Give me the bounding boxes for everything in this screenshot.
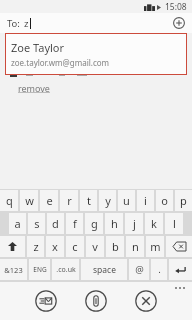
staticText: space	[93, 264, 116, 276]
button[interactable]: To:	[0, 13, 192, 33]
staticText: ENG	[33, 265, 47, 274]
button[interactable]: t	[80, 190, 97, 211]
button[interactable]: b	[106, 236, 124, 257]
staticText: a	[14, 216, 21, 231]
button[interactable]: e	[40, 190, 58, 211]
button[interactable]: k	[145, 213, 163, 234]
staticText: k	[151, 216, 157, 231]
button[interactable]: Attach	[84, 289, 108, 313]
staticText: d	[52, 216, 59, 231]
button[interactable]: Send	[34, 289, 58, 313]
button[interactable]: remove	[18, 82, 50, 94]
staticText: o	[161, 193, 168, 208]
staticText: .	[158, 263, 161, 276]
staticText: 15:08	[165, 1, 187, 13]
staticText: b	[112, 239, 119, 254]
button[interactable]: z	[27, 236, 44, 257]
button[interactable]: y	[99, 190, 116, 211]
staticText: To:	[7, 17, 20, 30]
staticText: n	[132, 239, 139, 254]
button[interactable]: v	[86, 236, 104, 257]
button[interactable]: i	[137, 190, 154, 211]
button[interactable]: q	[0, 190, 18, 211]
button[interactable]: More options	[175, 287, 185, 289]
staticText: l	[173, 216, 176, 231]
staticText: remove	[18, 82, 50, 94]
staticText: z	[33, 239, 39, 254]
button[interactable]: c	[66, 236, 84, 257]
staticText: t	[87, 193, 91, 208]
staticText: v	[92, 239, 98, 254]
staticText: x	[52, 239, 58, 254]
button[interactable]: h	[105, 213, 123, 234]
button[interactable]: f	[66, 213, 83, 234]
button[interactable]: &123	[0, 259, 27, 280]
staticText: zoe.taylor.wm@gmail.com	[11, 57, 110, 68]
staticText: h	[111, 216, 118, 231]
button[interactable]: Backspace	[166, 236, 192, 257]
button[interactable]: p	[175, 190, 192, 211]
staticText: Zoe Taylor	[11, 40, 65, 55]
button[interactable]: d	[47, 213, 64, 234]
button[interactable]: n	[126, 236, 144, 257]
button[interactable]: l	[165, 213, 183, 234]
button[interactable]: m	[146, 236, 164, 257]
button[interactable]: @	[129, 259, 149, 280]
button[interactable]: .co.uk	[52, 259, 79, 280]
button[interactable]: r	[60, 190, 78, 211]
staticText: .co.uk	[56, 265, 76, 275]
button[interactable]: j	[125, 213, 143, 234]
button[interactable]: Zoe Taylor	[5, 33, 187, 75]
staticText: g	[91, 216, 98, 231]
staticText: r	[67, 193, 72, 208]
button[interactable]: s	[28, 213, 45, 234]
button[interactable]: Add recipient	[172, 16, 186, 30]
button[interactable]: g	[85, 213, 103, 234]
button[interactable]: Close	[134, 289, 158, 313]
staticText: p	[180, 193, 187, 208]
staticText: z	[24, 17, 29, 30]
button[interactable]: space	[81, 259, 127, 280]
button[interactable]: x	[46, 236, 64, 257]
staticText: u	[123, 193, 130, 208]
button[interactable]: .	[151, 259, 167, 280]
staticText: &123	[4, 265, 23, 275]
staticText: s	[34, 216, 40, 231]
staticText: w	[25, 193, 34, 208]
button[interactable]: ENG	[29, 259, 50, 280]
button[interactable]: a	[9, 213, 26, 234]
staticText: j	[133, 216, 136, 231]
button[interactable]: Enter	[169, 259, 192, 280]
staticText: q	[6, 193, 13, 208]
staticText: @	[135, 263, 144, 276]
button[interactable]: u	[118, 190, 135, 211]
staticText: c	[72, 239, 78, 254]
staticText: m	[150, 239, 161, 254]
button[interactable]: Shift	[0, 236, 25, 257]
staticText: y	[105, 193, 111, 208]
button[interactable]: o	[156, 190, 173, 211]
button[interactable]: w	[20, 190, 38, 211]
staticText: e	[46, 193, 53, 208]
staticText: i	[144, 193, 147, 208]
staticText: f	[73, 216, 77, 231]
